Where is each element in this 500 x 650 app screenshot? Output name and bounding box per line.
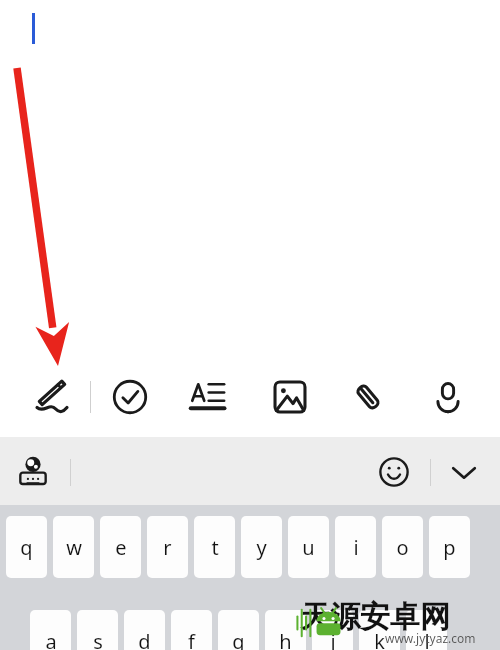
staticText: d	[138, 628, 151, 650]
button[interactable]: t	[194, 516, 235, 578]
staticText: q	[20, 534, 33, 561]
staticText: f	[188, 628, 195, 650]
button[interactable]: l	[406, 610, 447, 650]
staticText: y	[256, 534, 267, 561]
button[interactable]: Voice input	[422, 371, 474, 423]
button[interactable]: Attach file	[342, 371, 394, 423]
staticText: g	[232, 628, 245, 650]
button[interactable]: Insert image	[264, 371, 316, 423]
button[interactable]: e	[100, 516, 141, 578]
staticText: t	[211, 534, 219, 561]
button[interactable]: p	[429, 516, 470, 578]
staticText: p	[443, 534, 456, 561]
button[interactable]: j	[312, 610, 353, 650]
staticText: 天源安卓网	[300, 598, 450, 636]
button[interactable]: h	[265, 610, 306, 650]
staticText: www.jytyaz.com	[385, 630, 476, 646]
staticText: l	[424, 628, 430, 650]
button[interactable]: s	[77, 610, 118, 650]
staticText: u	[302, 534, 315, 561]
staticText: i	[353, 534, 359, 561]
staticText: a	[45, 628, 57, 650]
staticText: s	[93, 628, 103, 650]
button[interactable]: y	[241, 516, 282, 578]
button[interactable]: r	[147, 516, 188, 578]
button[interactable]: i	[335, 516, 376, 578]
button[interactable]: o	[382, 516, 423, 578]
button[interactable]: Emoji	[372, 450, 416, 494]
button[interactable]: q	[6, 516, 47, 578]
button[interactable]: d	[124, 610, 165, 650]
button[interactable]: u	[288, 516, 329, 578]
button[interactable]: k	[359, 610, 400, 650]
staticText: h	[279, 628, 292, 650]
staticText: w	[66, 534, 82, 561]
staticText: k	[374, 628, 385, 650]
button[interactable]: Draw	[26, 371, 78, 423]
button[interactable]: Text formatting	[182, 371, 234, 423]
staticText: r	[163, 534, 172, 561]
staticText: o	[396, 534, 409, 561]
button[interactable]: w	[53, 516, 94, 578]
staticText: j	[330, 628, 336, 650]
staticText: e	[115, 534, 127, 561]
button[interactable]: Checklist	[104, 371, 156, 423]
button[interactable]: g	[218, 610, 259, 650]
button[interactable]: a	[30, 610, 71, 650]
button[interactable]: Hide keyboard	[442, 450, 486, 494]
button[interactable]: f	[171, 610, 212, 650]
button[interactable]: Switch input method	[11, 450, 55, 494]
